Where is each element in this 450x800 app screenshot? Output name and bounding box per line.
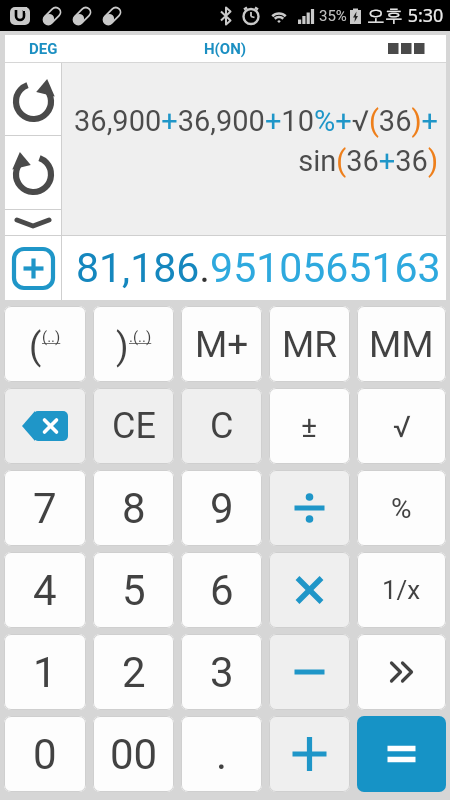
staticText: √ [393,409,411,444]
button[interactable] [5,63,61,135]
button[interactable] [5,210,61,235]
button[interactable]: 6 [181,552,262,628]
staticText: 오후 5:30 [367,3,444,28]
staticText: 6 [210,566,234,615]
button[interactable] [269,552,350,628]
button[interactable]: 0 [4,716,86,792]
button[interactable]: . [181,716,262,792]
button[interactable] [269,470,350,546]
button[interactable] [357,716,446,792]
button[interactable]: √ [357,388,446,464]
button[interactable] [5,136,61,209]
staticText: .(..) [129,328,152,346]
button[interactable]: 9 [181,470,262,546]
staticText: 9 [210,484,234,533]
button[interactable]: CE [93,388,174,464]
staticText: ± [301,409,318,444]
button[interactable]: 00 [93,716,174,792]
staticText: DEG [29,40,58,58]
staticText: 8 [122,484,146,533]
staticText: MM [369,323,434,366]
staticText: CE [112,405,156,447]
button[interactable]: ± [269,388,350,464]
button[interactable] [4,388,86,464]
button[interactable]: 5 [93,552,174,628]
staticText: ) [116,326,129,368]
staticText: M+ [195,323,249,366]
staticText: % [391,492,412,525]
button[interactable]: 7 [4,470,86,546]
button[interactable]: M+ [181,306,262,382]
button[interactable]: C [181,388,262,464]
button[interactable]: 8 [93,470,174,546]
staticText: 5 [122,566,146,615]
staticText: (..) [42,328,61,346]
button[interactable]: 4 [4,552,86,628]
staticText: MR [282,323,338,366]
button[interactable] [269,716,350,792]
button[interactable]: ) [93,306,174,382]
staticText: 00 [110,730,158,779]
staticText: C [210,405,234,447]
staticText: 35% [319,7,347,25]
staticText: H(ON) [204,40,247,58]
staticText: 7 [33,484,57,533]
button[interactable]: ( [4,306,86,382]
button[interactable] [269,634,350,710]
button[interactable]: 1 [4,634,86,710]
staticText: 0 [33,730,57,779]
button[interactable]: MR [269,306,350,382]
button[interactable]: 2 [93,634,174,710]
staticText: 1/x [382,575,421,605]
button[interactable]: 1/x [357,552,446,628]
button[interactable]: 3 [181,634,262,710]
button[interactable]: MM [357,306,446,382]
button[interactable] [5,236,61,300]
staticText: ( [29,326,42,368]
staticText: . [216,730,228,779]
staticText: 81,186.9510565163 [76,244,441,292]
button[interactable]: % [357,470,446,546]
staticText: 2 [122,648,146,697]
staticText: 1 [33,648,57,697]
staticText: 4 [33,566,57,615]
button[interactable] [357,634,446,710]
staticText: 36,900+36,900+10%+√(36)+ sin(36+36) [74,104,438,178]
staticText: 3 [210,648,234,697]
